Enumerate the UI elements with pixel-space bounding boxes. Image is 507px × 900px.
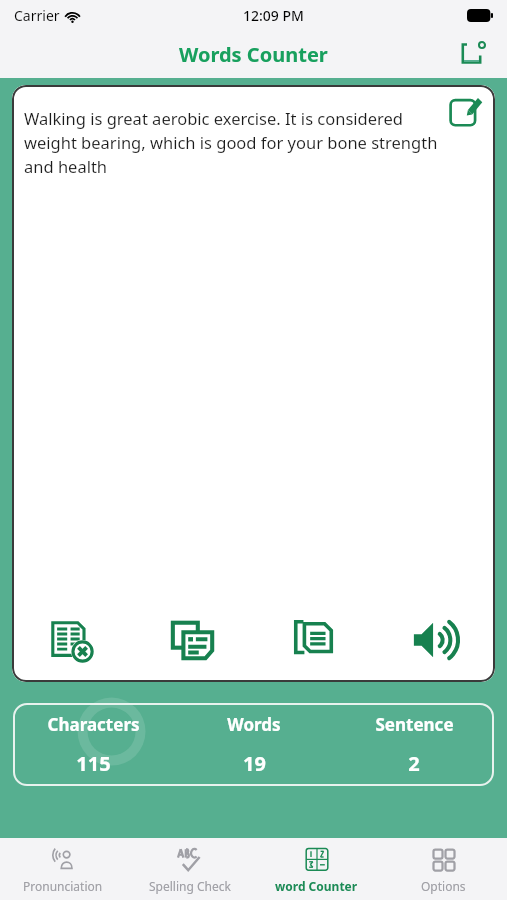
staticText: 12:09 PM — [243, 6, 304, 25]
staticText: Walking is great aerobic exercise. It is… — [24, 107, 441, 178]
staticText: word Counter — [275, 878, 358, 894]
staticText: Options — [421, 878, 466, 894]
staticText: Words Counter — [179, 41, 328, 68]
button[interactable]: Edit — [445, 93, 485, 133]
button[interactable]: Copy — [253, 598, 374, 682]
button[interactable]: Characters — [13, 703, 494, 786]
staticText: 115 — [76, 750, 111, 777]
button[interactable]: Spelling Check — [126, 838, 253, 900]
staticText: Characters — [47, 713, 140, 736]
staticText: Sentence — [375, 713, 454, 736]
button[interactable]: Pronunciation — [0, 838, 126, 900]
staticText: Pronunciation — [23, 878, 103, 894]
staticText: Carrier — [14, 6, 60, 25]
button[interactable]: word Counter — [253, 838, 380, 900]
button[interactable]: Options — [380, 838, 507, 900]
staticText: 19 — [243, 750, 266, 777]
button[interactable]: Paste — [132, 598, 253, 682]
staticText: Words — [227, 713, 281, 736]
button[interactable]: Clear text — [12, 598, 132, 682]
staticText: Spelling Check — [149, 878, 231, 894]
button[interactable]: Speak — [374, 598, 495, 682]
staticText: 2 — [408, 750, 420, 777]
button[interactable]: Word count badge — [453, 34, 493, 74]
